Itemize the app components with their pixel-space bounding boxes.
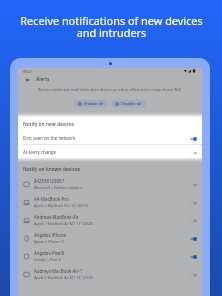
button[interactable]: Toggle xyxy=(189,253,197,261)
button[interactable]: Enable all xyxy=(74,100,108,107)
staticText: Alerts xyxy=(36,76,50,83)
button[interactable]: Angelos iPhone xyxy=(18,229,202,247)
staticText: At every change xyxy=(23,149,56,155)
button[interactable]: Toggle xyxy=(189,271,197,279)
staticText: 09:41 xyxy=(23,69,33,74)
button[interactable]: Toggle xyxy=(189,235,197,243)
button[interactable]: 842536123957 xyxy=(18,175,202,193)
button[interactable]: Audreys-MacBook-Air-1 xyxy=(18,265,202,283)
staticText: Receive mobile and email alerts when dev… xyxy=(38,87,182,92)
button[interactable]: Angelos-Pixel6 xyxy=(18,247,202,265)
staticText: First seen on the network xyxy=(23,135,76,141)
staticText: Angelos-Pixel6 xyxy=(34,250,65,256)
button[interactable]: Back xyxy=(22,74,33,85)
staticText: Apple | MacBook Air M1 13" (2020) xyxy=(34,275,94,280)
staticText: Disable all xyxy=(121,101,142,107)
button[interactable]: First seen on the network xyxy=(18,131,202,144)
staticText: Microsoft | Surface Laptop 4 xyxy=(34,185,83,190)
staticText: Notify on new devices xyxy=(23,121,75,128)
button[interactable]: Andreas-MacBook-Air xyxy=(18,211,202,229)
staticText: Notify on known devices xyxy=(23,166,81,173)
button[interactable]: AA-MacBook-Pro xyxy=(18,193,202,211)
staticText: AA-MacBook-Pro xyxy=(34,196,69,202)
button[interactable]: Toggle xyxy=(189,217,197,225)
staticText: 842536123957 xyxy=(34,178,65,184)
staticText: Receive notifications of new devices and… xyxy=(20,13,203,40)
staticText: Angelos iPhone xyxy=(34,232,67,238)
button[interactable]: At every change xyxy=(18,145,202,158)
button[interactable]: Toggle xyxy=(189,149,197,157)
staticText: Google | Pixel 6 xyxy=(34,257,61,262)
button[interactable]: Toggle xyxy=(189,199,197,207)
button[interactable]: Disable all xyxy=(111,100,146,107)
button[interactable]: Toggle xyxy=(189,181,197,189)
button[interactable]: Toggle xyxy=(189,135,197,143)
staticText: Andreas-MacBook-Air xyxy=(34,214,79,220)
staticText: Enable all xyxy=(84,101,104,107)
staticText: Apple | MacBook Air M1 13" (2020) xyxy=(34,221,94,226)
staticText: Apple | MacBook Pro 16" (2019) xyxy=(34,203,88,208)
staticText: Apple | iPhone 12 xyxy=(34,239,65,244)
staticText: Audreys-MacBook-Air-1 xyxy=(34,268,83,274)
